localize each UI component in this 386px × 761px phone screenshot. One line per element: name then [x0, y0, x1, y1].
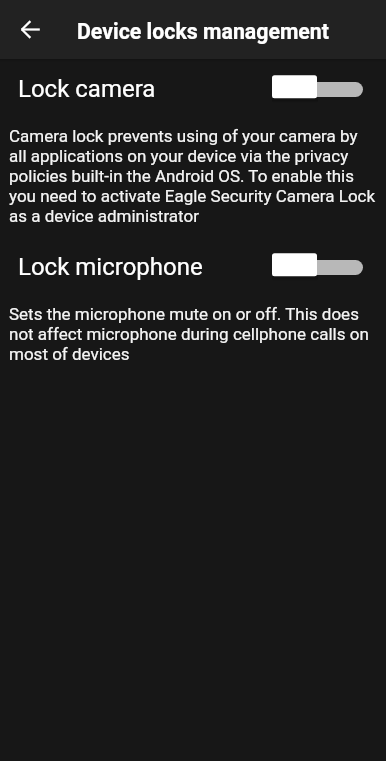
button[interactable]: Toggle switch: [272, 250, 363, 282]
staticText: Camera lock prevents using of your camer…: [9, 126, 378, 226]
staticText: Sets the microphone mute on or off. This…: [9, 304, 378, 364]
button[interactable]: Lock microphone: [0, 247, 386, 287]
staticText: Lock microphone: [18, 253, 203, 281]
button[interactable]: Lock camera: [0, 69, 386, 109]
button[interactable]: Toggle switch: [272, 72, 363, 104]
staticText: Lock camera: [18, 75, 156, 103]
button[interactable]: Navigate up: [8, 7, 53, 52]
staticText: Device locks management: [77, 19, 329, 44]
